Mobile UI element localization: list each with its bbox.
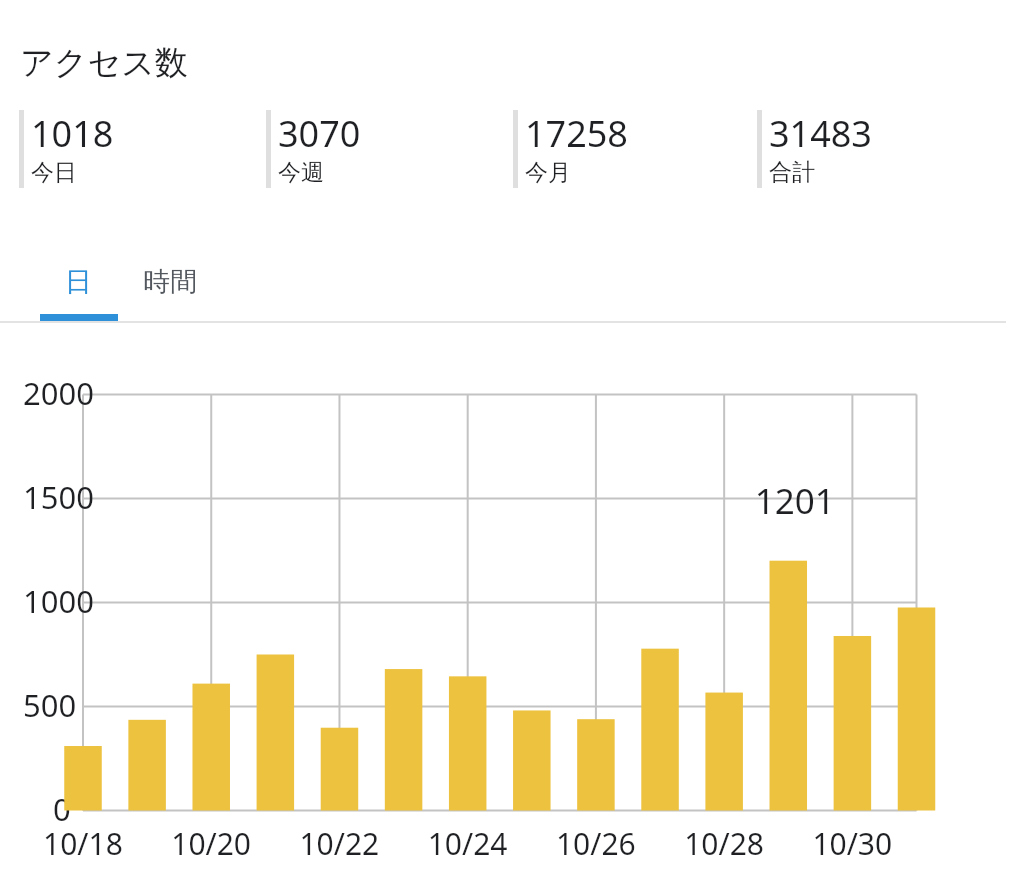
other: 日別アクセス数の棒グラフ bbox=[0, 0, 1024, 893]
staticText: 1018 bbox=[31, 109, 114, 158]
staticText: 今日 bbox=[31, 158, 77, 187]
staticText: 3070 bbox=[278, 109, 361, 158]
staticText: 17258 bbox=[525, 109, 628, 158]
staticText: 今月 bbox=[525, 158, 571, 187]
staticText: アクセス数 bbox=[20, 42, 189, 84]
button[interactable]: 日 bbox=[39, 252, 117, 311]
button[interactable]: 1018 bbox=[19, 110, 114, 188]
button[interactable]: 31483 bbox=[757, 110, 872, 188]
staticText: 日 bbox=[65, 265, 92, 299]
button[interactable]: 時間 bbox=[117, 252, 222, 311]
staticText: 今週 bbox=[278, 158, 324, 187]
staticText: 時間 bbox=[143, 265, 197, 299]
staticText: 合計 bbox=[769, 158, 815, 187]
button[interactable]: 17258 bbox=[513, 110, 628, 188]
button[interactable]: 3070 bbox=[266, 110, 361, 188]
staticText: 31483 bbox=[769, 109, 872, 158]
